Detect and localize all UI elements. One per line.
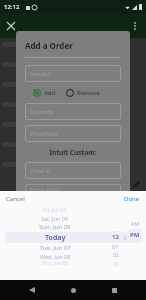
staticText: Remove — [77, 89, 100, 97]
button[interactable]: Back — [23, 281, 41, 299]
button[interactable]: Today — [5, 232, 141, 243]
staticText: Crew # — [30, 167, 50, 175]
button[interactable]: Cancel — [0, 191, 73, 206]
button[interactable]: Add — [33, 89, 56, 97]
staticText: 12 — [112, 233, 119, 241]
staticText: Done — [124, 195, 140, 203]
staticText: Intuit Custom: — [25, 148, 121, 157]
staticText: Enter Date — [30, 186, 60, 194]
button[interactable]: Remove — [66, 89, 100, 97]
staticText: Wed, Jun 08 — [40, 253, 71, 260]
button[interactable]: Quantity — [25, 103, 121, 120]
staticText: AM — [131, 220, 140, 227]
staticText: Sun, Jun 05 — [39, 223, 71, 231]
button[interactable]: More options — [126, 17, 144, 35]
staticText: : — [124, 234, 126, 242]
staticText: Tue, Jun 07 — [40, 244, 71, 252]
staticText: 01 — [112, 243, 119, 250]
button[interactable]: Fri, Jun 03 — [0, 207, 146, 214]
button[interactable]: Home — [64, 281, 82, 299]
staticText: Fri, Jun 03 — [43, 207, 67, 214]
staticText: Vendor — [30, 70, 51, 78]
button[interactable]: Sat, Jun 04 — [0, 214, 146, 222]
button[interactable]: Tue, Jun 07 — [0, 243, 146, 252]
button[interactable]: Vendor — [25, 65, 121, 82]
staticText: Add a Order — [25, 40, 73, 51]
button[interactable]: Close — [2, 17, 20, 35]
staticText: Quantity — [30, 108, 55, 116]
staticText: Sat, Jun 04 — [41, 215, 69, 222]
button[interactable]: Price/Unit — [25, 125, 121, 142]
button[interactable]: Done — [73, 191, 146, 206]
button[interactable]: 12 — [109, 231, 122, 242]
button[interactable]: Crew # — [25, 162, 121, 179]
staticText: PM — [130, 231, 140, 239]
button[interactable]: Wed, Jun 08 — [0, 252, 146, 260]
button[interactable]: Recent apps — [105, 281, 123, 299]
staticText: Add — [44, 89, 56, 97]
button[interactable]: PM — [128, 229, 142, 240]
staticText: Cancel — [6, 195, 25, 203]
button[interactable]: Sun, Jun 05 — [0, 222, 146, 231]
staticText: 03 — [113, 261, 119, 267]
staticText: Thu, Jun 09 — [42, 260, 69, 267]
staticText: 02 — [113, 252, 119, 259]
staticText: 12:12 — [4, 3, 20, 11]
staticText: Today — [45, 233, 66, 243]
staticText: Price/Unit — [30, 130, 58, 138]
button[interactable]: Thu, Jun 09 — [0, 260, 146, 267]
button[interactable]: Edit — [129, 178, 143, 192]
button[interactable]: Enter Date — [25, 184, 121, 195]
